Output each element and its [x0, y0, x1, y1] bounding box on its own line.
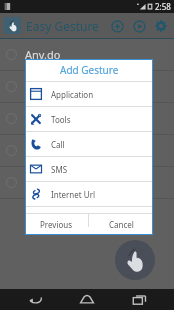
staticText: Application — [51, 89, 94, 100]
staticText: Add Gesture — [60, 63, 119, 77]
button[interactable]: Recent apps — [122, 289, 156, 310]
staticText: Phone — [25, 143, 59, 158]
staticText: 2:58 — [155, 1, 171, 12]
button[interactable]: Back — [18, 289, 52, 310]
staticText: Previous — [40, 219, 73, 230]
button[interactable]: Call — [25, 132, 153, 156]
button[interactable]: Add gesture — [106, 15, 128, 37]
button[interactable]: Cancel — [89, 214, 153, 235]
button[interactable]: Phone — [0, 135, 174, 166]
button[interactable]: Play — [128, 15, 150, 37]
button[interactable]: SMS — [25, 157, 153, 181]
button[interactable]: Home — [70, 289, 104, 310]
button[interactable]: Internet Url — [25, 182, 153, 206]
button[interactable]: Chrome — [0, 167, 174, 198]
staticText: Call — [51, 139, 65, 150]
button[interactable]: Tools — [25, 107, 153, 131]
staticText: Internet Url — [51, 189, 95, 200]
button[interactable]: Application — [25, 82, 153, 106]
staticText: Gmail — [25, 79, 56, 94]
button[interactable]: Any.do — [0, 39, 174, 70]
button[interactable]: Previous — [25, 214, 88, 235]
staticText: Tools — [51, 114, 71, 125]
staticText: Cancel — [109, 219, 134, 230]
button[interactable]: Gmail — [0, 71, 174, 102]
staticText: Chrome — [25, 175, 67, 190]
staticText: SMS — [51, 164, 68, 175]
staticText: Easy Gesture — [26, 18, 99, 34]
button[interactable]: Maps — [0, 103, 174, 134]
button[interactable]: Gesture overlay — [115, 240, 155, 280]
staticText: Any.do — [25, 47, 61, 62]
staticText: Maps — [25, 111, 54, 126]
button[interactable]: Settings — [150, 15, 172, 37]
